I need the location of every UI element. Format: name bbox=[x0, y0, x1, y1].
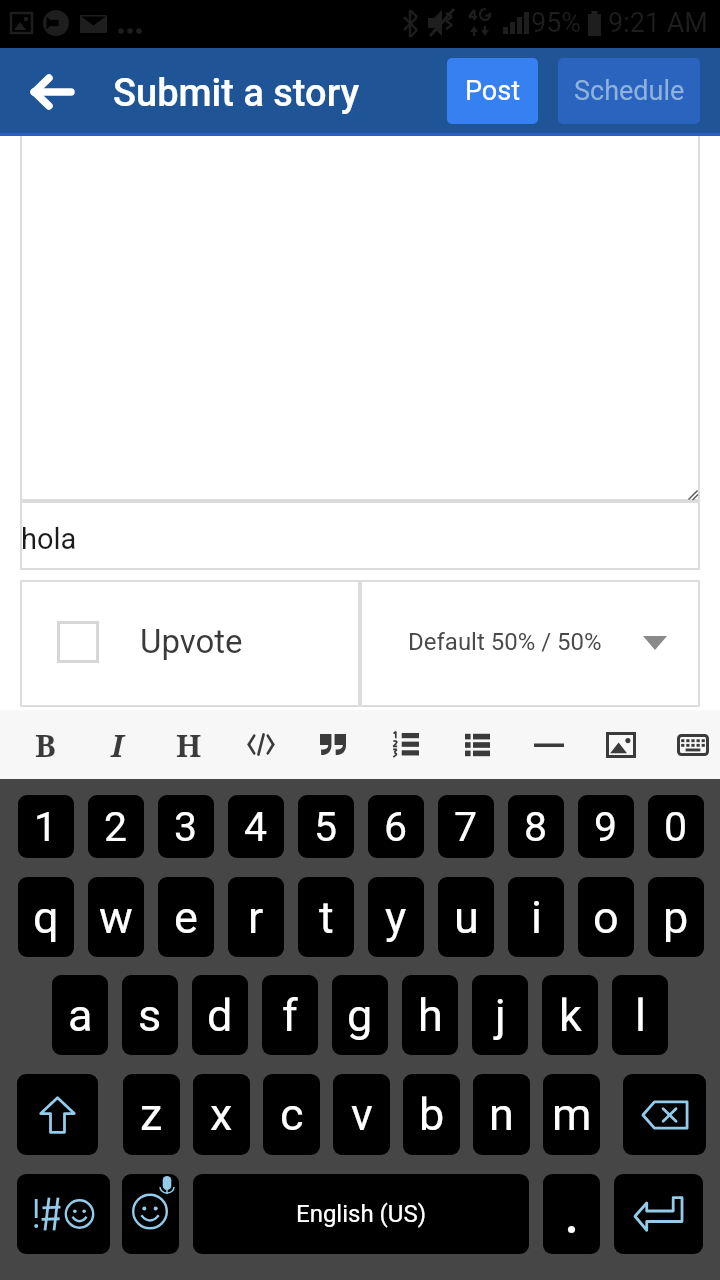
button[interactable]: Italic bbox=[81, 710, 153, 779]
staticText: t bbox=[319, 891, 334, 944]
staticText: u bbox=[454, 891, 479, 944]
button[interactable]: u bbox=[438, 877, 494, 957]
button[interactable]: Default 50% / 50% bbox=[360, 580, 700, 707]
button[interactable]: b bbox=[403, 1074, 460, 1155]
button[interactable]: f bbox=[262, 975, 318, 1055]
button[interactable]: r bbox=[228, 877, 284, 957]
button[interactable]: English (US) bbox=[193, 1174, 529, 1254]
button[interactable]: c bbox=[263, 1074, 320, 1155]
button[interactable] bbox=[20, 136, 700, 501]
button[interactable]: a bbox=[52, 975, 108, 1055]
staticText: j bbox=[495, 989, 506, 1042]
button[interactable]: v bbox=[333, 1074, 390, 1155]
staticText: Post bbox=[465, 75, 521, 107]
staticText: x bbox=[210, 1088, 233, 1141]
button[interactable]: Heading bbox=[153, 710, 225, 779]
button[interactable]: Bulleted list bbox=[441, 710, 513, 779]
button[interactable]: Quote bbox=[297, 710, 369, 779]
button[interactable]: Emoji and voice input bbox=[122, 1174, 179, 1254]
button[interactable]: 2 bbox=[88, 795, 144, 858]
staticText: 4 bbox=[244, 803, 268, 851]
button[interactable]: hola bbox=[20, 501, 700, 570]
button[interactable]: z bbox=[123, 1074, 180, 1155]
staticText: 1 bbox=[34, 803, 58, 851]
staticText: 3 bbox=[174, 803, 198, 851]
button[interactable]: Shift bbox=[17, 1074, 98, 1155]
button[interactable]: Schedule bbox=[558, 58, 700, 124]
staticText: 2 bbox=[104, 803, 128, 851]
staticText: r bbox=[248, 891, 264, 944]
button[interactable]: Period bbox=[543, 1174, 600, 1254]
staticText: b bbox=[419, 1088, 445, 1141]
button[interactable]: q bbox=[18, 877, 74, 957]
staticText: k bbox=[559, 989, 582, 1042]
button[interactable]: o bbox=[578, 877, 634, 957]
button[interactable]: Divider bbox=[513, 710, 585, 779]
button[interactable]: Code bbox=[225, 710, 297, 779]
button[interactable]: Symbols bbox=[17, 1174, 110, 1254]
button[interactable]: l bbox=[612, 975, 668, 1055]
button[interactable]: Insert image bbox=[585, 710, 657, 779]
staticText: e bbox=[174, 891, 198, 944]
button[interactable]: g bbox=[332, 975, 388, 1055]
button[interactable]: e bbox=[158, 877, 214, 957]
button[interactable]: 9 bbox=[578, 795, 634, 858]
button[interactable]: 3 bbox=[158, 795, 214, 858]
button[interactable]: 1 bbox=[18, 795, 74, 858]
button[interactable]: t bbox=[298, 877, 354, 957]
staticText: o bbox=[593, 891, 619, 944]
button[interactable]: 6 bbox=[368, 795, 424, 858]
staticText: 6 bbox=[384, 803, 408, 851]
button[interactable]: h bbox=[402, 975, 458, 1055]
button[interactable]: Bold bbox=[9, 710, 81, 779]
button[interactable]: Back bbox=[8, 48, 96, 136]
button[interactable]: w bbox=[88, 877, 144, 957]
button[interactable]: k bbox=[542, 975, 598, 1055]
staticText: Schedule bbox=[574, 75, 685, 107]
staticText: 5 bbox=[314, 803, 338, 851]
staticText: h bbox=[418, 989, 443, 1042]
staticText: s bbox=[138, 989, 162, 1042]
staticText: English (US) bbox=[296, 1200, 426, 1228]
button[interactable]: d bbox=[192, 975, 248, 1055]
button[interactable]: 4 bbox=[228, 795, 284, 858]
staticText: 95% bbox=[531, 7, 582, 39]
staticText: 8 bbox=[524, 803, 548, 851]
button[interactable]: Hide keyboard bbox=[657, 710, 720, 779]
button[interactable]: x bbox=[193, 1074, 250, 1155]
button[interactable]: Upvote bbox=[20, 580, 360, 707]
staticText: c bbox=[280, 1088, 304, 1141]
staticText: l bbox=[635, 989, 646, 1042]
staticText: f bbox=[282, 989, 298, 1042]
button[interactable]: m bbox=[543, 1074, 600, 1155]
button[interactable]: 7 bbox=[438, 795, 494, 858]
staticText: 7 bbox=[454, 803, 478, 851]
button[interactable]: n bbox=[473, 1074, 530, 1155]
button[interactable]: Numbered list bbox=[369, 710, 441, 779]
button[interactable]: 0 bbox=[648, 795, 704, 858]
staticText: 9:21 AM bbox=[608, 7, 708, 39]
staticText: y bbox=[385, 891, 407, 944]
staticText: q bbox=[33, 891, 59, 944]
staticText: B bbox=[35, 724, 56, 766]
button[interactable]: y bbox=[368, 877, 424, 957]
button[interactable]: Enter bbox=[614, 1174, 703, 1254]
staticText: 0 bbox=[664, 803, 688, 851]
button[interactable]: s bbox=[122, 975, 178, 1055]
staticText: Default 50% / 50% bbox=[408, 628, 602, 656]
staticText: v bbox=[351, 1088, 373, 1141]
button[interactable]: i bbox=[508, 877, 564, 957]
button[interactable]: Post bbox=[447, 58, 538, 124]
staticText: d bbox=[207, 989, 233, 1042]
staticText: i bbox=[531, 891, 542, 944]
staticText: Upvote bbox=[140, 622, 243, 661]
button[interactable]: Backspace bbox=[623, 1074, 706, 1155]
staticText: n bbox=[489, 1088, 514, 1141]
staticText: m bbox=[552, 1088, 592, 1141]
button[interactable]: 8 bbox=[508, 795, 564, 858]
button[interactable]: 5 bbox=[298, 795, 354, 858]
button[interactable]: p bbox=[648, 877, 704, 957]
button[interactable]: j bbox=[472, 975, 528, 1055]
staticText: w bbox=[99, 891, 133, 944]
staticText: I bbox=[111, 724, 124, 766]
